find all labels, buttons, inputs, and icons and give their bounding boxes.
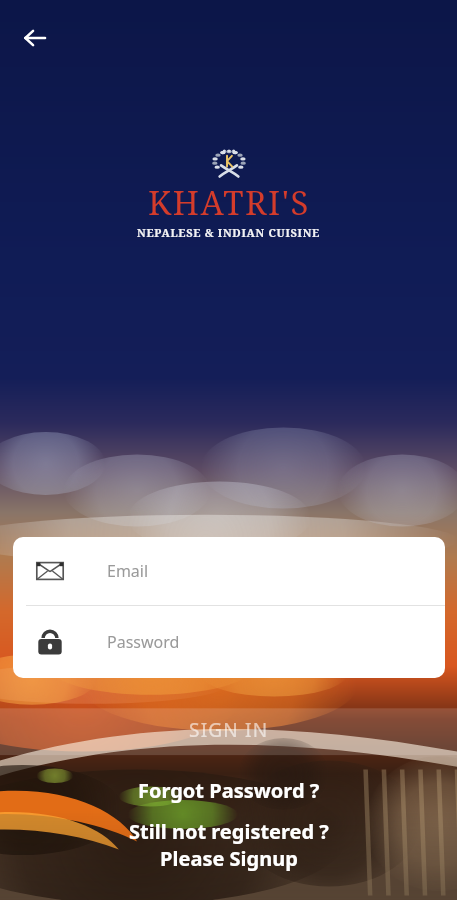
staticText: Password	[107, 631, 180, 653]
button[interactable]: Still not registered ?	[0, 818, 457, 872]
staticText: Email	[107, 560, 149, 582]
button[interactable]: Password	[13, 606, 445, 678]
staticText: Forgot Password ?	[138, 777, 320, 804]
staticText: NEPALESE & INDIAN CUISINE	[137, 225, 320, 240]
button[interactable]: Email	[13, 537, 445, 605]
staticText: SIGN IN	[189, 717, 269, 743]
staticText: Still not registered ?	[129, 818, 329, 845]
button[interactable]: SIGN IN	[0, 706, 457, 754]
button[interactable]: Forgot Password ?	[0, 773, 457, 807]
staticText: Please Signup	[160, 845, 298, 872]
staticText: KHATRI'S	[148, 180, 310, 225]
button[interactable]: Back	[14, 17, 56, 59]
